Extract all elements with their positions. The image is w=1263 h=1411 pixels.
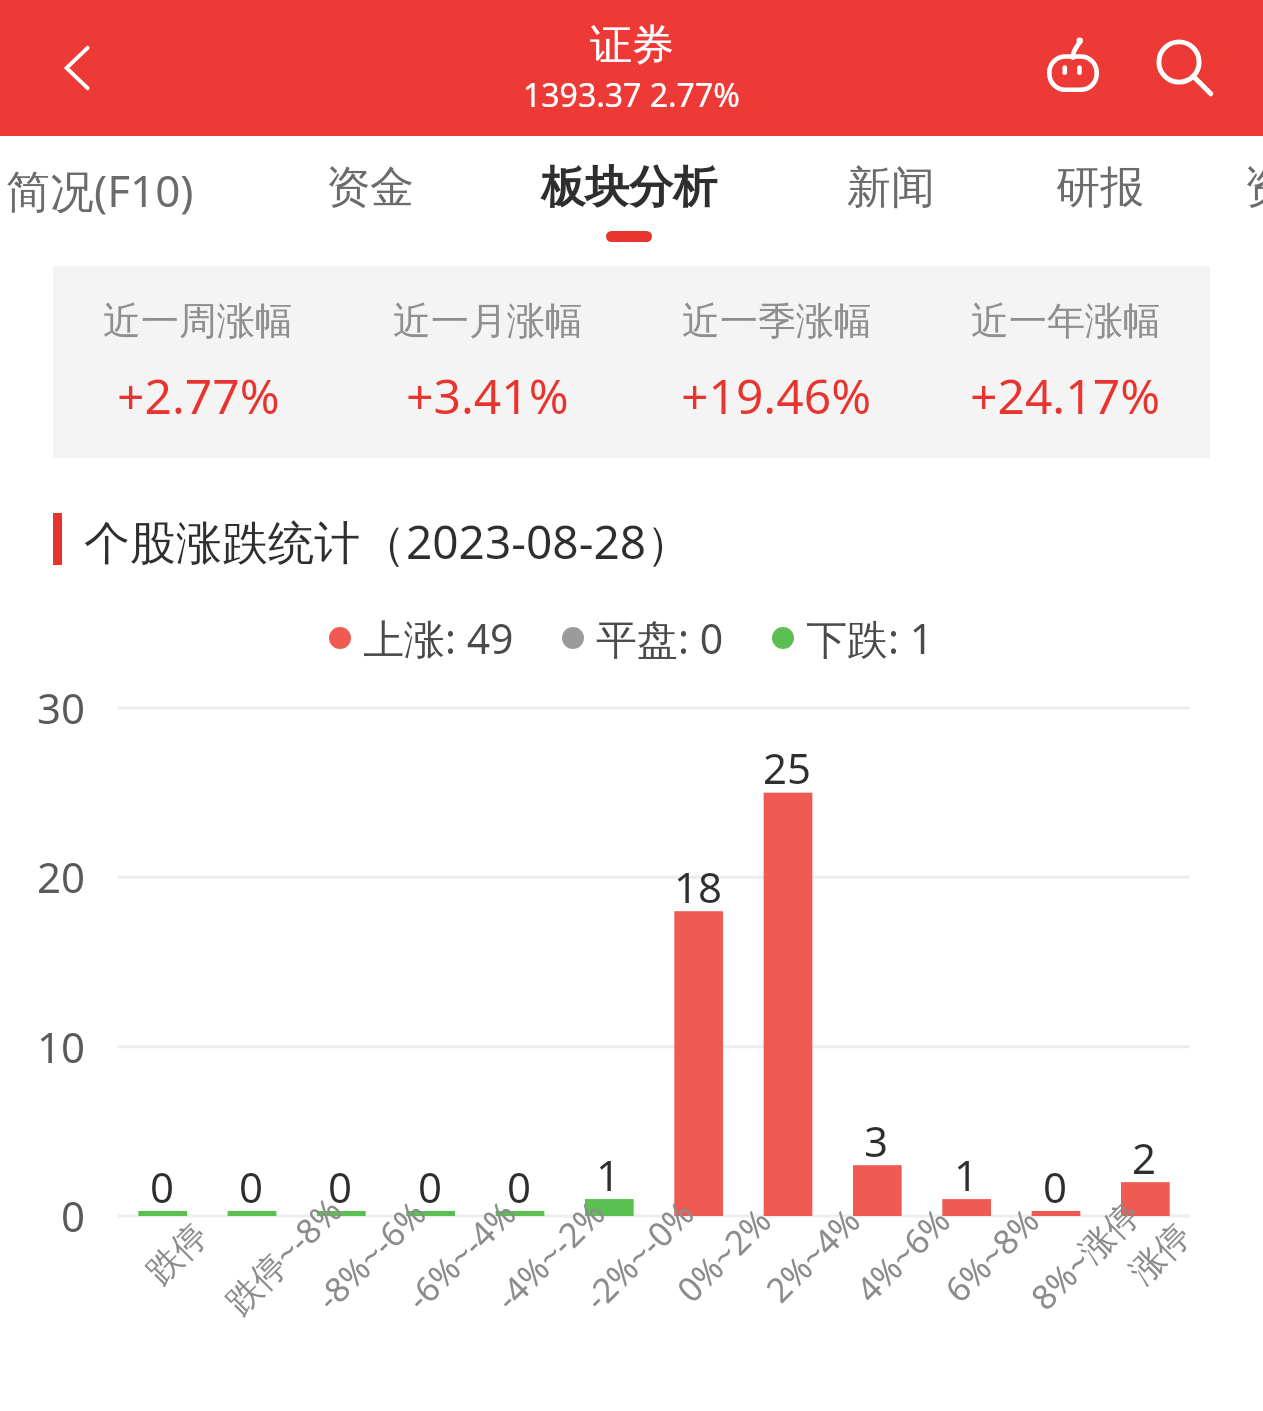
staticText: 近一季涨幅 xyxy=(682,297,872,345)
staticText: -2%~-0% xyxy=(574,1190,703,1320)
button[interactable]: 上涨: 49 xyxy=(329,610,514,666)
staticText: 个股涨跌统计（2023-08-28） xyxy=(84,510,693,568)
staticText: 10 xyxy=(37,1018,86,1075)
staticText: 1 xyxy=(954,1146,979,1203)
staticText: 30 xyxy=(37,679,86,736)
staticText: 25 xyxy=(763,739,812,796)
staticText: +19.46% xyxy=(681,363,872,428)
button[interactable]: Search xyxy=(1139,22,1231,114)
button[interactable]: 板块分析 xyxy=(0,136,1263,266)
staticText: 1 xyxy=(596,1146,621,1203)
staticText: 板块分析 xyxy=(541,160,717,215)
staticText: 6%~8% xyxy=(935,1198,1048,1312)
button[interactable]: 简况(F10) xyxy=(0,136,1263,266)
staticText: 0 xyxy=(328,1158,353,1215)
staticText: 近一年涨幅 xyxy=(971,297,1161,345)
staticText: +24.17% xyxy=(970,363,1161,428)
staticText: 下跌: 1 xyxy=(806,610,934,666)
staticText: 8%~涨停 xyxy=(1021,1191,1149,1319)
staticText: 近一月涨幅 xyxy=(393,297,583,345)
staticText: 0 xyxy=(1043,1158,1068,1215)
staticText: 简况(F10) xyxy=(6,160,194,220)
staticText: -8%~-6% xyxy=(306,1190,435,1320)
button[interactable]: AI assistant xyxy=(1027,22,1119,114)
button[interactable]: 近一月涨幅 xyxy=(343,266,632,458)
staticText: 研报 xyxy=(1056,160,1144,215)
staticText: 证券 xyxy=(590,19,674,72)
staticText: 2%~4% xyxy=(756,1198,869,1312)
staticText: 跌停~-8% xyxy=(215,1187,352,1323)
button[interactable]: 新闻 xyxy=(0,136,1263,266)
staticText: -6%~-4% xyxy=(396,1190,525,1320)
staticText: 上涨: 49 xyxy=(363,610,514,666)
staticText: 平盘: 0 xyxy=(596,610,724,666)
staticText: +3.41% xyxy=(406,363,569,428)
button[interactable]: 下跌: 1 xyxy=(772,610,934,666)
button[interactable]: 平盘: 0 xyxy=(562,610,724,666)
button[interactable]: 近一季涨幅 xyxy=(632,266,921,458)
button[interactable]: 近一周涨幅 xyxy=(53,266,343,458)
staticText: 2 xyxy=(1132,1129,1157,1186)
staticText: 0%~2% xyxy=(667,1198,780,1312)
staticText: 资金 xyxy=(326,160,414,215)
staticText: 20 xyxy=(37,848,86,905)
staticText: 4%~6% xyxy=(846,1198,959,1312)
staticText: 新闻 xyxy=(847,160,935,215)
staticText: 0 xyxy=(418,1158,443,1215)
staticText: -4%~-2% xyxy=(485,1190,614,1320)
staticText: 1393.37 2.77% xyxy=(523,73,740,117)
button[interactable]: Back xyxy=(40,30,116,106)
staticText: +2.77% xyxy=(117,363,280,428)
staticText: 资 xyxy=(1244,160,1263,215)
staticText: 3 xyxy=(864,1112,889,1169)
staticText: 近一周涨幅 xyxy=(103,297,293,345)
staticText: 0 xyxy=(61,1187,86,1244)
staticText: 跌停 xyxy=(138,1214,216,1293)
staticText: 0 xyxy=(150,1158,175,1215)
button[interactable]: 资金 xyxy=(0,136,1263,266)
button[interactable]: 近一年涨幅 xyxy=(921,266,1210,458)
staticText: 0 xyxy=(507,1158,532,1215)
staticText: 18 xyxy=(674,858,723,915)
button[interactable]: 资 xyxy=(0,136,1263,266)
staticText: 0 xyxy=(239,1158,264,1215)
staticText: 涨停 xyxy=(1121,1214,1199,1293)
button[interactable]: 研报 xyxy=(0,136,1263,266)
